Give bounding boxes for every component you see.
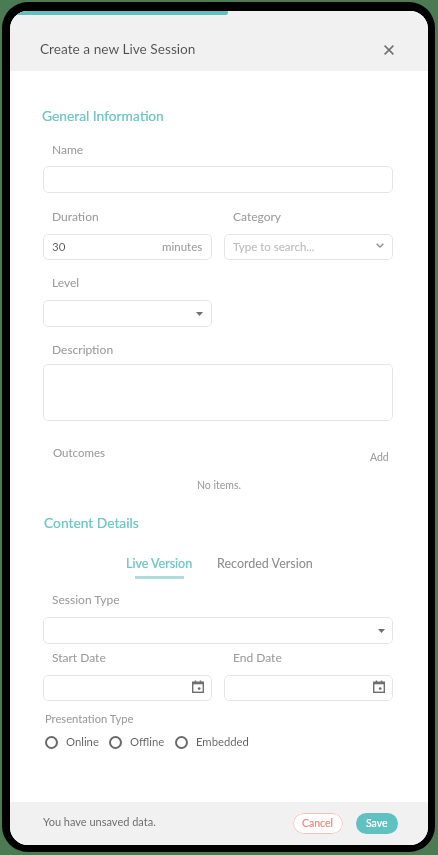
- staticText: End Date: [233, 650, 282, 664]
- button[interactable]: [224, 675, 393, 701]
- staticText: Live Version: [126, 556, 193, 571]
- button[interactable]: [43, 675, 212, 701]
- button[interactable]: Add: [370, 451, 389, 464]
- staticText: Cancel: [302, 817, 334, 830]
- staticText: General Information: [42, 107, 164, 124]
- staticText: Save: [366, 817, 388, 830]
- button[interactable]: Outcomes: [53, 446, 106, 460]
- button[interactable]: Cancel: [293, 813, 343, 834]
- button[interactable]: [43, 617, 393, 644]
- button[interactable]: [43, 300, 212, 327]
- button[interactable]: 30: [43, 234, 212, 260]
- staticText: Name: [52, 142, 84, 156]
- staticText: Presentation Type: [45, 712, 134, 725]
- staticText: Start Date: [52, 650, 106, 664]
- staticText: Description: [52, 342, 114, 356]
- staticText: Outcomes: [53, 446, 106, 460]
- staticText: Type to search...: [233, 240, 315, 254]
- staticText: You have unsaved data.: [43, 815, 156, 828]
- button[interactable]: Save: [356, 813, 398, 834]
- staticText: Content Details: [44, 514, 139, 531]
- button[interactable]: Close: [378, 39, 400, 61]
- button[interactable]: Type to search...: [224, 234, 393, 260]
- button[interactable]: Online: [45, 735, 99, 749]
- button[interactable]: Offline: [109, 735, 165, 749]
- staticText: Session Type: [52, 592, 120, 606]
- staticText: Offline: [130, 735, 165, 749]
- staticText: Level: [52, 275, 80, 289]
- staticText: Category: [233, 209, 282, 223]
- button[interactable]: [43, 364, 393, 421]
- staticText: 30: [52, 240, 66, 254]
- staticText: Add: [370, 451, 389, 464]
- staticText: minutes: [162, 240, 203, 254]
- button[interactable]: [43, 166, 393, 193]
- button[interactable]: Recorded Version: [217, 556, 313, 571]
- staticText: Online: [66, 735, 99, 749]
- staticText: Duration: [52, 209, 99, 223]
- button[interactable]: Live Version: [126, 556, 193, 579]
- staticText: Embedded: [196, 735, 249, 749]
- button[interactable]: Embedded: [175, 735, 249, 749]
- staticText: No items.: [10, 479, 428, 492]
- staticText: Create a new Live Session: [40, 40, 196, 56]
- staticText: Recorded Version: [217, 556, 313, 571]
